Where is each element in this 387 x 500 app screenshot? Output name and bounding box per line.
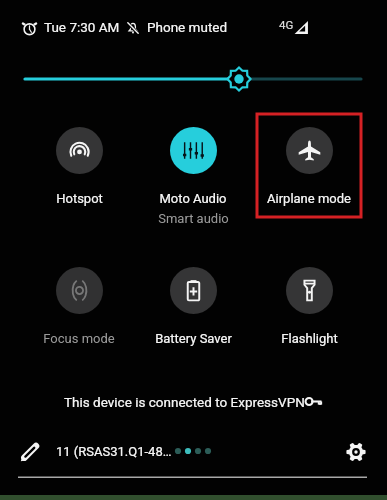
staticText: Phone muted (147, 19, 228, 35)
button[interactable]: Battery Saver (137, 267, 249, 346)
staticText: Airplane mode (267, 191, 351, 206)
staticText: Hotspot (56, 191, 103, 206)
staticText: 4G (279, 18, 294, 31)
staticText: Flashlight (281, 331, 338, 346)
button[interactable]: Edit quick settings (20, 442, 40, 462)
staticText: Battery Saver (155, 331, 232, 346)
button[interactable]: Focus mode (23, 267, 135, 346)
staticText: Tue 7:30 AM (44, 19, 120, 35)
button[interactable]: Moto Audio (137, 127, 249, 226)
button[interactable]: Flashlight (253, 267, 365, 346)
staticText: 11 (RSAS31.Q1-48… (56, 444, 172, 459)
staticText: Focus mode (43, 331, 115, 346)
button[interactable]: Settings (346, 442, 366, 462)
button[interactable]: Hotspot (23, 127, 135, 206)
staticText: This device is connected to ExpressVPN (64, 394, 305, 410)
button[interactable]: Airplane mode (253, 127, 365, 206)
staticText: Moto Audio (159, 191, 227, 206)
staticText: Smart audio (158, 211, 229, 226)
